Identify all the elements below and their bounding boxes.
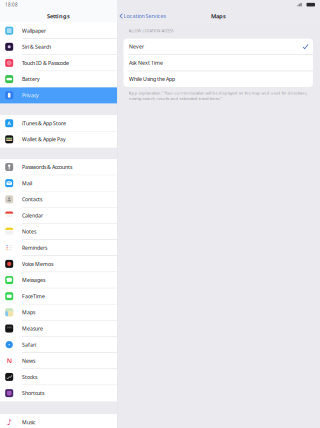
button[interactable]: Safari (0, 337, 117, 353)
staticText: ♪ (7, 417, 12, 427)
button[interactable]: N (0, 353, 117, 369)
button[interactable]: Passwords & Accounts (0, 159, 117, 175)
button[interactable]: Privacy (0, 87, 117, 103)
button[interactable]: FaceTime (0, 288, 117, 304)
staticText: Messages (22, 277, 45, 284)
staticText: News (22, 357, 35, 364)
staticText: Shortcuts (22, 390, 44, 397)
staticText: Settings (47, 12, 70, 20)
button[interactable]: Contacts (0, 191, 117, 207)
staticText: Reminders (22, 244, 47, 251)
staticText: Touch ID & Passcode (22, 59, 69, 66)
button[interactable]: Wallpaper (0, 23, 117, 39)
button[interactable]: Maps (0, 304, 117, 321)
staticText: Ask Next Time (129, 59, 163, 66)
staticText: Notes (22, 228, 36, 235)
staticText: Wallpaper (22, 27, 46, 34)
staticText: Siri & Search (22, 43, 51, 50)
staticText: Wallet & Apple Pay (22, 136, 66, 143)
staticText: Never (129, 43, 144, 50)
staticText: Calendar (22, 212, 43, 219)
button[interactable]: Never (123, 39, 313, 54)
button[interactable]: Wallet & Apple Pay (0, 131, 117, 148)
staticText: Maps (211, 12, 226, 20)
button[interactable]: Shortcuts (0, 385, 117, 401)
button[interactable]: Notes (0, 224, 117, 240)
button[interactable]: Calendar (0, 208, 117, 224)
button[interactable]: ♪ (0, 414, 117, 428)
staticText: N (7, 356, 12, 365)
staticText: Voice Memos (22, 260, 53, 267)
button[interactable]: Ask Next Time (123, 55, 313, 71)
staticText: While Using the App (129, 76, 175, 83)
staticText: ALLOW LOCATION ACCESS (128, 28, 173, 33)
staticText: Battery (22, 76, 40, 83)
staticText: Music (22, 419, 35, 426)
staticText: Measure (22, 325, 43, 332)
staticText: Contacts (22, 196, 42, 203)
staticText: Mail (22, 180, 32, 187)
button[interactable]: Touch ID & Passcode (0, 55, 117, 71)
staticText: Safari (22, 341, 36, 348)
staticText: App explanation: “Your current location … (128, 90, 307, 101)
button[interactable]: Stocks (0, 369, 117, 385)
button[interactable]: Location Services (117, 10, 168, 22)
button[interactable]: A (0, 115, 117, 131)
staticText: FaceTime (22, 293, 45, 300)
staticText: Maps (22, 309, 35, 316)
button[interactable]: Voice Memos (0, 256, 117, 272)
button[interactable]: Reminders (0, 240, 117, 256)
staticText: Stocks (22, 373, 37, 380)
staticText: Location Services (123, 12, 166, 20)
button[interactable]: Siri & Search (0, 39, 117, 55)
button[interactable]: Messages (0, 272, 117, 288)
staticText: 18:08 (5, 2, 18, 8)
staticText: A (7, 119, 11, 127)
button[interactable]: Mail (0, 175, 117, 191)
button[interactable]: Battery (0, 71, 117, 87)
button[interactable]: While Using the App (123, 71, 313, 87)
staticText: Privacy (22, 92, 39, 99)
staticText: Passwords & Accounts (22, 163, 72, 170)
staticText: iTunes & App Store (22, 120, 66, 127)
button[interactable]: Measure (0, 321, 117, 337)
